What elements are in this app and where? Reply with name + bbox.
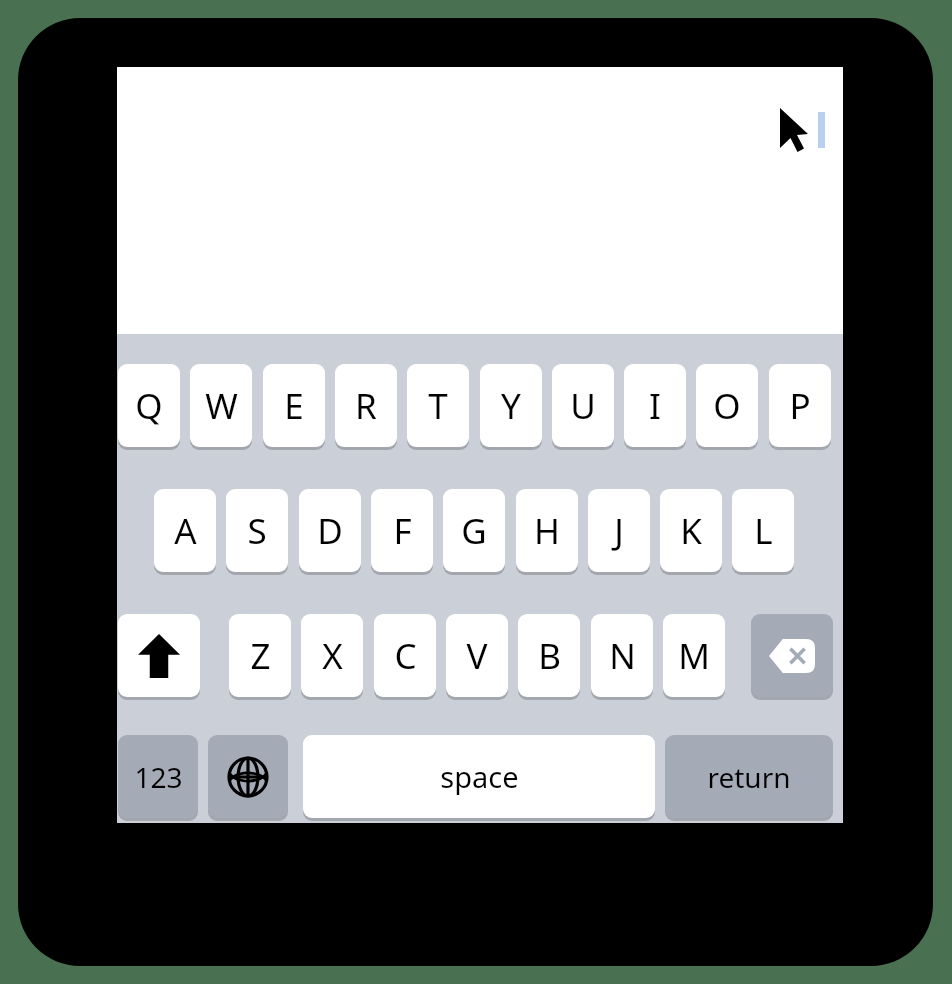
- staticText: T: [428, 382, 448, 430]
- button[interactable]: X: [301, 614, 363, 697]
- button[interactable]: L: [732, 489, 794, 572]
- button[interactable]: A: [154, 489, 216, 572]
- staticText: M: [678, 632, 710, 680]
- button[interactable]: U: [552, 364, 614, 447]
- staticText: K: [680, 507, 702, 555]
- button[interactable]: D: [299, 489, 361, 572]
- button[interactable]: F: [371, 489, 433, 572]
- button[interactable]: Q: [118, 364, 180, 447]
- staticText: O: [713, 382, 741, 430]
- button[interactable]: V: [446, 614, 508, 697]
- staticText: P: [789, 382, 811, 430]
- staticText: 123: [134, 758, 183, 796]
- button[interactable]: Y: [480, 364, 542, 447]
- button[interactable]: J: [588, 489, 650, 572]
- button[interactable]: O: [696, 364, 758, 447]
- button[interactable]: space: [303, 735, 655, 818]
- staticText: Q: [135, 382, 163, 430]
- button[interactable]: 123: [118, 735, 198, 818]
- staticText: V: [466, 632, 488, 680]
- staticText: Y: [501, 382, 521, 430]
- staticText: G: [461, 507, 487, 555]
- staticText: J: [614, 507, 624, 555]
- staticText: L: [754, 507, 773, 555]
- staticText: W: [205, 382, 238, 430]
- button[interactable]: R: [335, 364, 397, 447]
- staticText: F: [393, 507, 412, 555]
- staticText: return: [707, 758, 791, 796]
- button[interactable]: C: [374, 614, 436, 697]
- button[interactable]: E: [263, 364, 325, 447]
- button[interactable]: Z: [229, 614, 291, 697]
- button[interactable]: T: [407, 364, 469, 447]
- button[interactable]: Shift: [118, 614, 200, 697]
- button[interactable]: Change keyboard language: [208, 735, 288, 818]
- button[interactable]: W: [190, 364, 252, 447]
- button[interactable]: P: [769, 364, 831, 447]
- button[interactable]: G: [443, 489, 505, 572]
- staticText: D: [317, 507, 343, 555]
- button[interactable]: return: [665, 735, 833, 818]
- staticText: Z: [250, 632, 271, 680]
- button[interactable]: B: [518, 614, 580, 697]
- button[interactable]: Backspace: [751, 614, 833, 697]
- button[interactable]: N: [591, 614, 653, 697]
- button[interactable]: H: [516, 489, 578, 572]
- button[interactable]: K: [660, 489, 722, 572]
- button[interactable]: S: [226, 489, 288, 572]
- button[interactable]: M: [663, 614, 725, 697]
- staticText: U: [570, 382, 596, 430]
- staticText: H: [534, 507, 560, 555]
- staticText: space: [440, 757, 519, 796]
- staticText: A: [174, 507, 197, 555]
- button[interactable]: I: [624, 364, 686, 447]
- staticText: N: [609, 632, 636, 680]
- staticText: I: [649, 382, 661, 430]
- staticText: E: [284, 382, 304, 430]
- staticText: C: [394, 632, 417, 680]
- staticText: B: [538, 632, 561, 680]
- staticText: R: [355, 382, 377, 430]
- staticText: X: [322, 632, 343, 680]
- staticText: S: [247, 507, 267, 555]
